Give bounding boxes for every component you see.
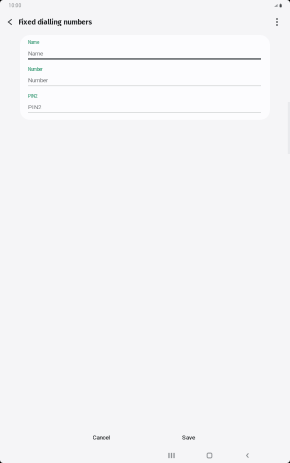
button[interactable]: Recent apps <box>152 449 190 461</box>
button[interactable]: Cancel <box>58 429 145 445</box>
button[interactable]: More options <box>269 11 290 33</box>
button[interactable]: Back <box>0 11 20 33</box>
staticText: 10:00 <box>8 3 21 8</box>
button[interactable]: Fixed dialling numbers <box>0 11 92 33</box>
button[interactable]: Back <box>228 449 266 461</box>
staticText: Number <box>28 77 48 84</box>
staticText: Save <box>182 434 195 441</box>
staticText: Name <box>28 50 43 57</box>
staticText: Cancel <box>92 434 110 441</box>
staticText: Name <box>28 40 39 45</box>
staticText: Number <box>28 67 43 72</box>
button[interactable]: Save <box>145 429 232 445</box>
staticText: PIN2 <box>28 94 38 99</box>
staticText: Fixed dialling numbers <box>18 18 92 26</box>
staticText: PIN2 <box>28 103 41 111</box>
button[interactable]: Home <box>190 449 228 461</box>
